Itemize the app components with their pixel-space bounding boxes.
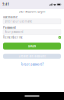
- button[interactable]: LOGIN: [3, 43, 61, 50]
- staticText: Password: [3, 26, 16, 29]
- staticText: Username: [3, 15, 18, 19]
- staticText: Your password: [4, 30, 23, 34]
- staticText: Forgot password?: [20, 63, 43, 66]
- staticText: User Account Login: [18, 10, 45, 13]
- staticText: Create an account: [18, 54, 45, 58]
- button[interactable]: Forgot password?: [0, 62, 64, 66]
- staticText: LOGIN: [28, 44, 36, 48]
- staticText: 9:41: [3, 3, 10, 6]
- button[interactable]: Create an account: [3, 54, 61, 59]
- staticText: Remember me: [3, 36, 23, 39]
- button[interactable]: Remember me: [3, 36, 61, 39]
- staticText: Enter your username: [4, 20, 32, 23]
